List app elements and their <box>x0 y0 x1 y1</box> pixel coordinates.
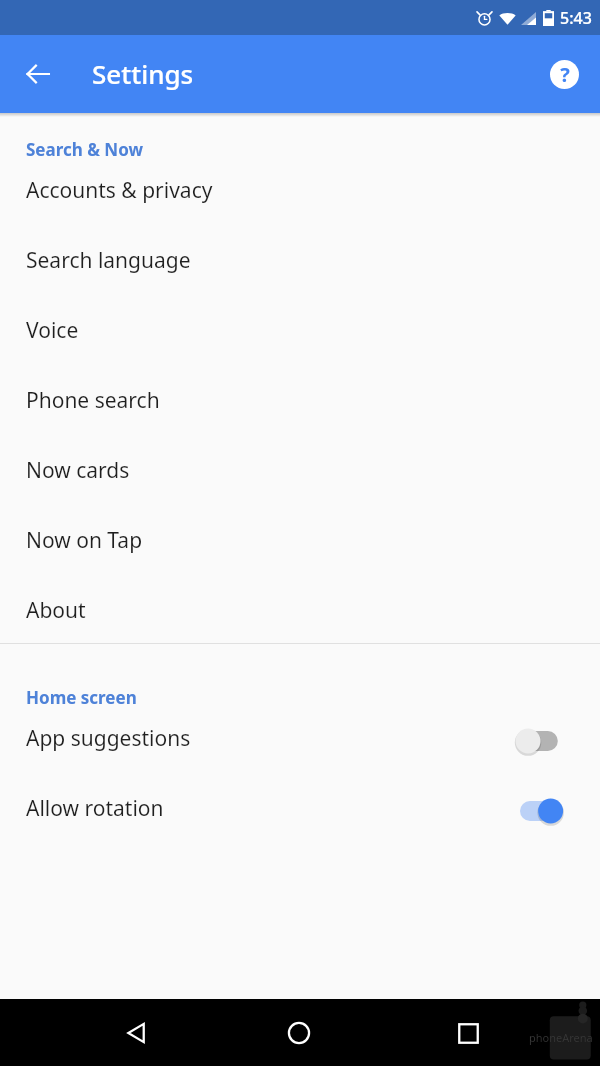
button[interactable]: App suggestions <box>0 708 600 755</box>
staticText: Allow rotation <box>26 794 164 823</box>
button[interactable]: Back <box>14 50 62 98</box>
staticText: Phone search <box>26 386 160 415</box>
button[interactable]: Help <box>542 52 586 96</box>
button[interactable]: Accounts & privacy <box>0 160 600 207</box>
staticText: ? <box>560 61 570 88</box>
staticText: Search & Now <box>26 138 144 160</box>
staticText: Settings <box>92 56 194 91</box>
staticText: phoneArena <box>529 1030 593 1045</box>
staticText: Home screen <box>26 686 137 708</box>
staticText: App suggestions <box>26 724 191 753</box>
staticText: Now on Tap <box>26 526 143 555</box>
button[interactable]: Now on Tap <box>0 487 600 557</box>
staticText: 5:43 <box>560 7 592 29</box>
button[interactable]: Voice <box>0 277 600 347</box>
button[interactable]: Phone search <box>0 347 600 417</box>
staticText: About <box>26 596 86 625</box>
button[interactable]: About <box>0 557 600 627</box>
button[interactable]: Home <box>275 1009 323 1057</box>
button[interactable]: Back <box>113 1009 161 1057</box>
staticText: Search language <box>26 246 191 275</box>
staticText: Accounts & privacy <box>26 176 213 205</box>
button[interactable]: Recents <box>444 1009 492 1057</box>
staticText: Voice <box>26 316 79 345</box>
staticText: Now cards <box>26 456 130 485</box>
button[interactable]: Allow rotation <box>0 755 600 825</box>
button[interactable]: Search language <box>0 207 600 277</box>
button[interactable]: Now cards <box>0 417 600 487</box>
